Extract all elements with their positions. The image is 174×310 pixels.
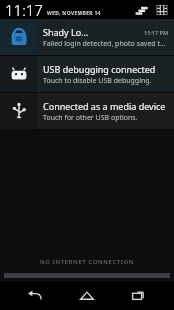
staticText: NO INTERNET CONNECTION	[40, 258, 135, 266]
staticText: Connected as a media device	[43, 100, 166, 112]
button[interactable]: Shady Login Guard	[0, 19, 174, 55]
staticText: 11:17	[5, 0, 43, 19]
staticText: Touch to disable USB debugging.	[43, 76, 152, 86]
button[interactable]: Home	[70, 282, 104, 310]
staticText: Touch for other USB options.	[43, 113, 138, 123]
button[interactable]: Connected as a media device	[0, 93, 174, 129]
staticText: Shady Login Guard	[43, 26, 93, 38]
button[interactable]: Quick settings	[155, 3, 169, 17]
staticText: Failed login detected, photo saved to Ga…	[43, 39, 169, 49]
button[interactable]: USB debugging connected	[0, 56, 174, 92]
staticText: WED, NOVEMBER 14	[47, 10, 101, 17]
staticText: USB debugging connected	[43, 63, 156, 75]
button[interactable]: Back	[18, 282, 52, 310]
staticText: 11:17 PM	[144, 29, 169, 36]
button[interactable]: Signal	[133, 2, 149, 18]
button[interactable]: Recent apps	[122, 282, 156, 310]
